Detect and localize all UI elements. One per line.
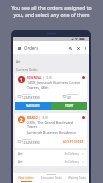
button[interactable]: Search xyxy=(66,44,74,52)
staticText: | 15:00 xyxy=(43,76,53,80)
staticText: ROSENDAL xyxy=(27,76,42,80)
staticText: You see all the orders assigned to xyxy=(4,5,99,12)
staticText: Towers, 48th xyxy=(27,85,49,90)
staticText: 2 xyxy=(20,117,23,123)
staticText: New orders xyxy=(18,176,34,180)
button[interactable]: Execution Tasks xyxy=(39,176,64,183)
button[interactable]: START xyxy=(51,102,87,110)
button[interactable]: More options xyxy=(82,45,88,51)
staticText: 1408, Jannatuh Business Center xyxy=(27,80,81,85)
staticText: Current Order xyxy=(16,67,38,71)
staticText: Waiting Tasks xyxy=(68,176,86,180)
staticText: Description xyxy=(67,93,79,96)
staticText: Order ID xyxy=(22,138,31,141)
staticText: Jumeirah Business Residence xyxy=(27,130,77,135)
button[interactable]: Art xyxy=(15,150,87,158)
button[interactable]: New orders xyxy=(13,176,39,183)
staticText: In Delivery xyxy=(65,160,80,164)
button[interactable]: Art xyxy=(15,158,87,166)
staticText: Art xyxy=(16,60,21,64)
staticText: START xyxy=(65,104,74,108)
staticText: Art xyxy=(18,152,23,156)
staticText: Order ID xyxy=(22,93,31,96)
staticText: 1234567890 xyxy=(22,96,40,100)
staticText: BIANCO xyxy=(27,116,38,120)
button[interactable]: 2 xyxy=(15,113,87,148)
staticText: In Delivery xyxy=(65,152,80,156)
staticText: | 15:00 xyxy=(39,116,49,120)
button[interactable]: 1 xyxy=(15,73,87,110)
staticText: 1234567890 xyxy=(22,141,40,145)
staticText: ACCEPT ORDER xyxy=(63,140,84,144)
staticText: Art xyxy=(18,160,23,164)
staticText: Orders xyxy=(24,45,39,51)
staticText: 49 xyxy=(67,96,71,100)
button[interactable]: Filter xyxy=(74,44,82,52)
button[interactable]: NAVIGATE xyxy=(15,102,51,110)
button[interactable]: Menu xyxy=(15,44,23,52)
staticText: you, and select any one of them xyxy=(4,12,99,19)
staticText: 1 xyxy=(20,77,23,83)
staticText: NAVIGATE xyxy=(26,104,40,108)
staticText: 230b, The Grand Boulevard Tower xyxy=(27,120,82,130)
button[interactable]: Waiting Tasks xyxy=(64,176,89,183)
staticText: Execution Tasks xyxy=(41,176,62,180)
